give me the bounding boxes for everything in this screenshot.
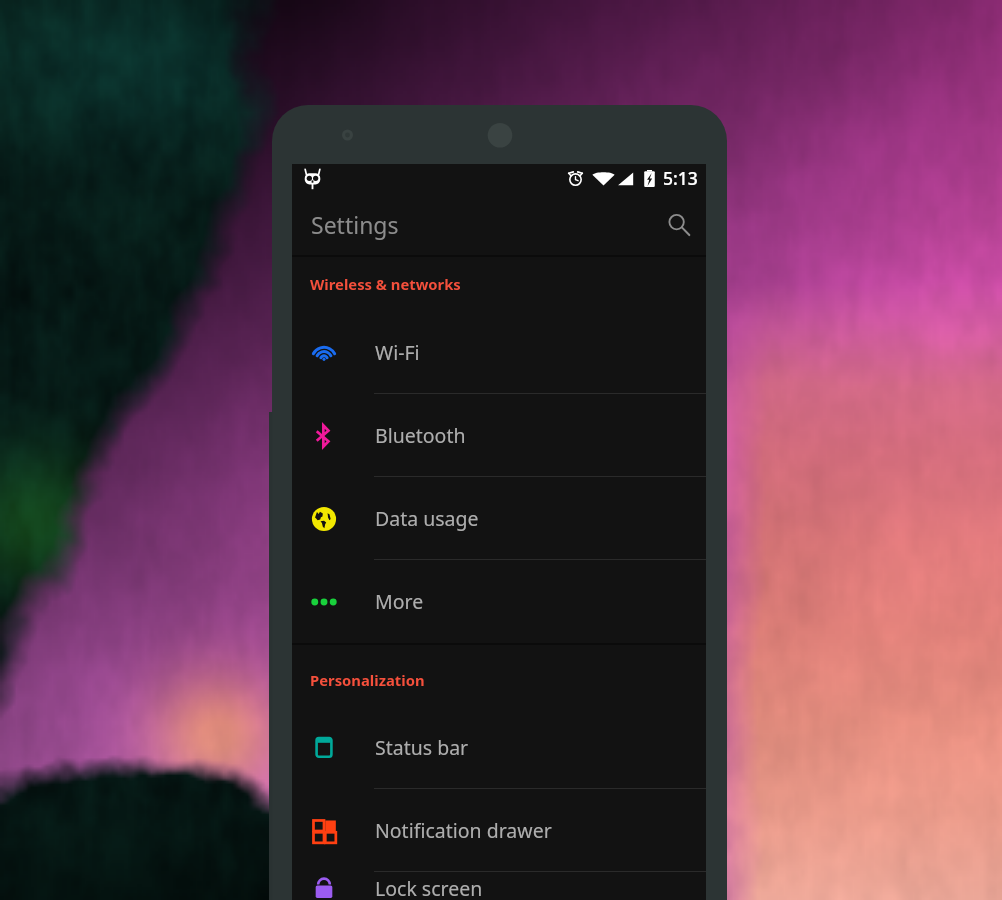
staticText: Bluetooth <box>375 422 466 449</box>
staticText: Lock screen <box>375 875 483 900</box>
button[interactable]: Notification drawer <box>292 789 706 872</box>
button[interactable]: Bluetooth <box>292 394 706 477</box>
staticText: Data usage <box>375 505 479 532</box>
button[interactable]: More <box>292 560 706 643</box>
staticText: Wi-Fi <box>375 339 420 366</box>
button[interactable]: Status bar <box>292 706 706 789</box>
button[interactable]: Data usage <box>292 477 706 560</box>
staticText: More <box>375 588 424 615</box>
staticText: Status bar <box>375 734 469 761</box>
button[interactable]: Wi-Fi <box>292 311 706 394</box>
staticText: 5:13 <box>663 166 698 190</box>
staticText: Notification drawer <box>375 817 552 844</box>
staticText: Personalization <box>310 670 425 690</box>
button[interactable]: Lock screen <box>292 872 706 900</box>
staticText: Wireless & networks <box>310 274 461 294</box>
button[interactable]: Search <box>655 201 703 249</box>
staticText: Settings <box>311 209 399 240</box>
